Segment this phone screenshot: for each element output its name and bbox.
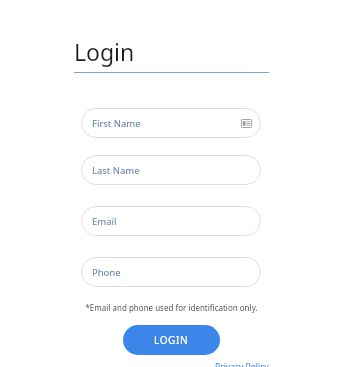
button[interactable]: LOGIN <box>123 325 220 355</box>
button[interactable]: Email <box>81 206 261 236</box>
other: Autofill contact <box>241 118 252 129</box>
button[interactable]: Last Name <box>81 155 261 185</box>
staticText: Privacy Policy <box>215 361 269 367</box>
button[interactable]: First Name <box>81 108 261 138</box>
staticText: Last Name <box>92 164 252 177</box>
button[interactable]: Phone <box>81 257 261 287</box>
staticText: First Name <box>92 117 241 130</box>
staticText: Login <box>74 36 135 67</box>
staticText: Email <box>92 215 252 228</box>
staticText: LOGIN <box>154 333 189 347</box>
button[interactable]: Privacy Policy <box>215 361 269 367</box>
staticText: Phone <box>92 266 252 279</box>
staticText: *Email and phone used for identification… <box>85 302 258 313</box>
